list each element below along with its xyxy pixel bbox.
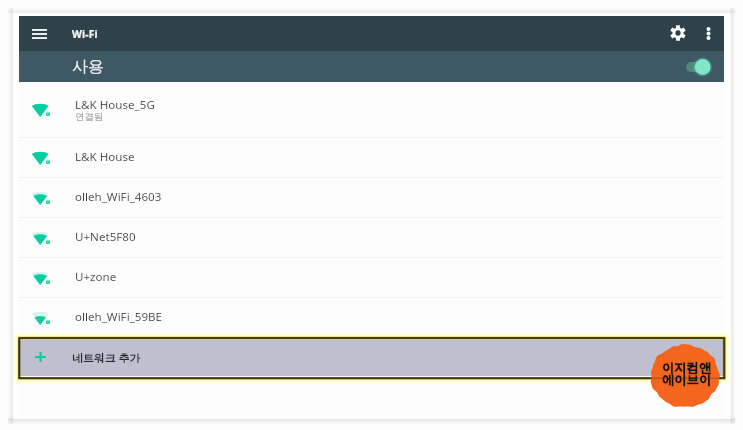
button[interactable]: olleh_WiFi_59BE — [19, 297, 724, 337]
button[interactable]: Open navigation drawer — [26, 22, 53, 46]
button[interactable]: Settings — [664, 19, 692, 47]
button[interactable]: More options — [696, 21, 721, 46]
staticText: L&K House_5G — [75, 97, 155, 113]
button[interactable]: U+zone — [19, 257, 724, 297]
staticText: L&K House — [75, 149, 135, 165]
button[interactable]: olleh_WiFi_4603 — [19, 177, 724, 217]
staticText: U+zone — [75, 269, 117, 285]
button[interactable]: 사용 — [19, 51, 724, 82]
button[interactable]: L&K House_5G — [19, 82, 724, 137]
staticText: 연결됨 — [75, 111, 104, 123]
staticText: olleh_WiFi_4603 — [75, 189, 162, 205]
staticText: 네트워크 추가 — [72, 350, 141, 365]
staticText: Wi-Fi — [72, 27, 98, 41]
staticText: 이지컴앤 에이브이 — [662, 360, 712, 388]
button[interactable]: 네트워크 추가 — [19, 340, 724, 376]
staticText: U+Net5F80 — [75, 229, 136, 245]
button[interactable]: L&K House — [19, 137, 724, 177]
button[interactable]: U+Net5F80 — [19, 217, 724, 257]
staticText: 사용 — [72, 57, 104, 77]
button[interactable]: Wi-Fi on — [679, 56, 713, 77]
staticText: olleh_WiFi_59BE — [75, 309, 163, 325]
